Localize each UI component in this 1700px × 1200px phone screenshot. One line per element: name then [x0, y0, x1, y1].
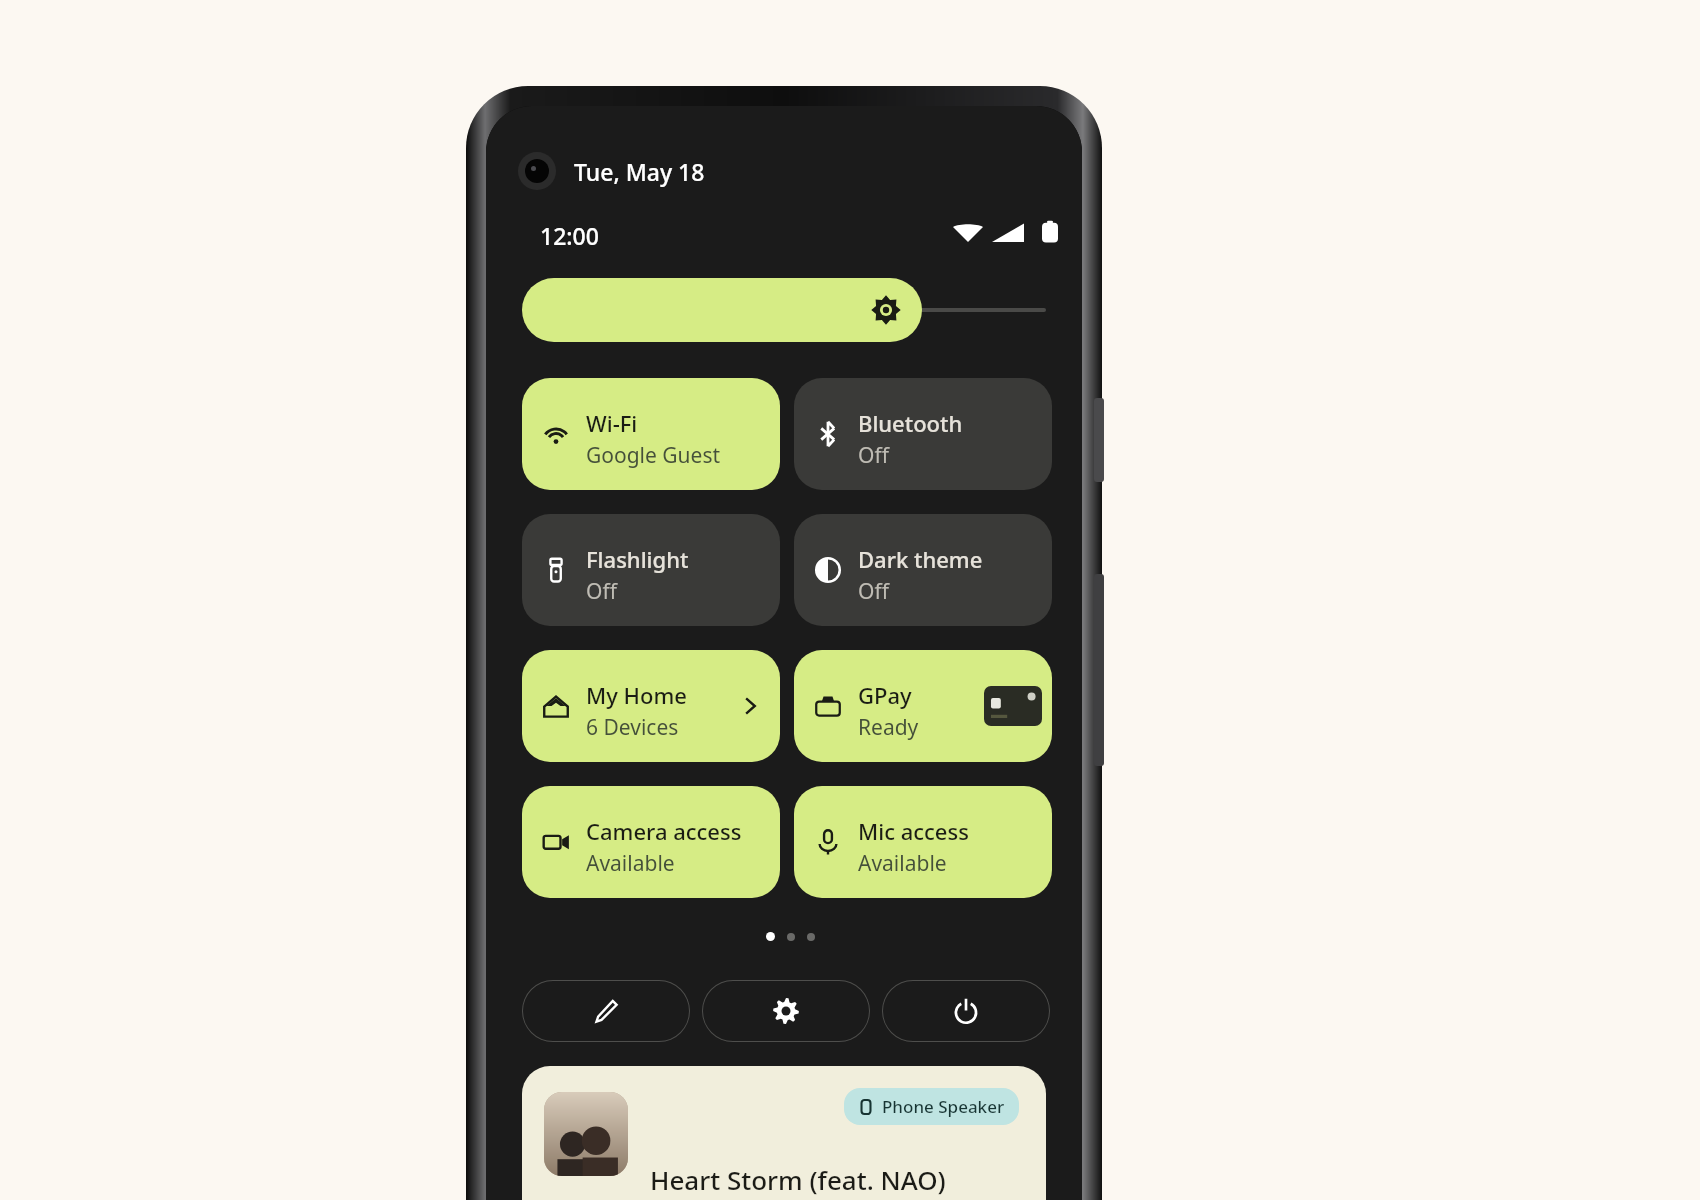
staticText: Google Guest [586, 441, 721, 470]
button[interactable]: Mic access [794, 786, 1052, 898]
staticText: Flashlight [586, 544, 689, 574]
staticText: Camera access [586, 816, 742, 846]
staticText: GPay [858, 680, 912, 710]
staticText: Off [858, 577, 889, 606]
button[interactable]: Wi-Fi [522, 378, 780, 490]
staticText: Off [858, 441, 889, 470]
staticText: Off [586, 577, 617, 606]
button[interactable]: Settings [702, 980, 870, 1042]
staticText: Ready [858, 713, 919, 742]
staticText: Heart Storm (feat. NAO) [650, 1162, 946, 1197]
staticText: Available [586, 849, 675, 878]
staticText: Mic access [858, 816, 969, 846]
staticText: 6 Devices [586, 713, 679, 742]
staticText: Available [858, 849, 947, 878]
button[interactable]: Bluetooth [794, 378, 1052, 490]
button[interactable]: Flashlight [522, 514, 780, 626]
button[interactable]: GPay [794, 650, 1052, 762]
staticText: Wi-Fi [586, 408, 638, 438]
staticText: 12:00 [540, 220, 599, 251]
staticText: Bluetooth [858, 408, 963, 438]
button[interactable]: Phone Speaker [522, 1066, 1046, 1200]
button[interactable]: Brightness [522, 278, 1046, 342]
button[interactable]: My Home [522, 650, 780, 762]
button[interactable]: Phone Speaker [844, 1088, 1019, 1125]
staticText: My Home [586, 680, 687, 710]
button[interactable]: Camera access [522, 786, 780, 898]
staticText: Phone Speaker [882, 1095, 1005, 1118]
staticText: Dark theme [858, 544, 983, 574]
button[interactable]: Power [882, 980, 1050, 1042]
button[interactable]: Dark theme [794, 514, 1052, 626]
staticText: Tue, May 18 [574, 156, 705, 187]
button[interactable]: Edit [522, 980, 690, 1042]
